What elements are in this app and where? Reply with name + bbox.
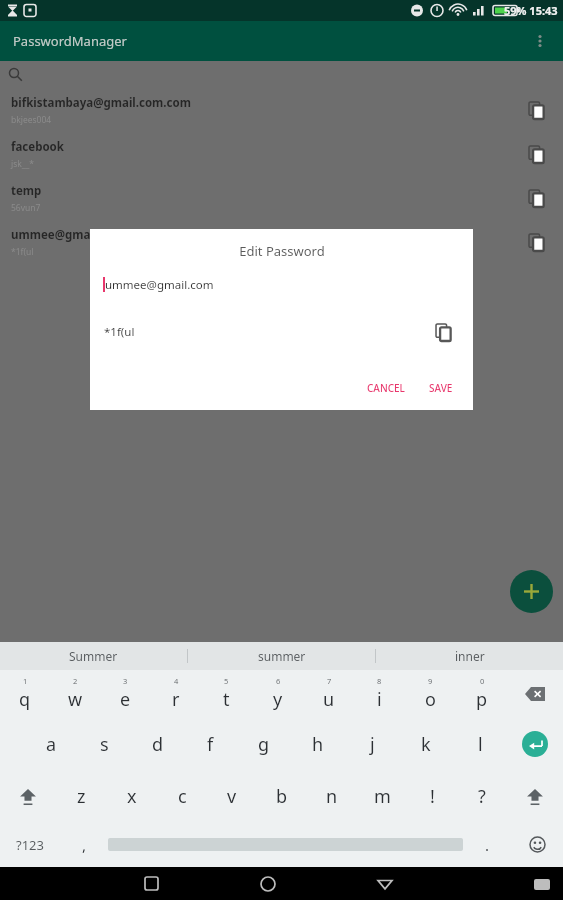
button[interactable]: Copy bbox=[431, 320, 455, 344]
button[interactable]: j bbox=[345, 718, 399, 770]
button[interactable]: SAVE bbox=[421, 376, 461, 400]
staticText: x bbox=[127, 784, 137, 809]
staticText: f bbox=[207, 732, 214, 757]
button[interactable]: 2 bbox=[50, 670, 100, 718]
staticText: w bbox=[68, 687, 83, 712]
button[interactable]: s bbox=[78, 718, 131, 770]
button[interactable]: facebook bbox=[0, 132, 563, 176]
button[interactable]: Space bbox=[108, 822, 463, 867]
staticText: 3 bbox=[123, 676, 128, 686]
staticText: p bbox=[476, 687, 488, 712]
button[interactable]: b bbox=[257, 770, 307, 822]
staticText: 4 bbox=[174, 676, 179, 686]
button[interactable]: Emoji bbox=[511, 822, 563, 867]
staticText: 5 bbox=[224, 676, 229, 686]
button[interactable]: *1f(ul bbox=[90, 319, 473, 345]
button[interactable]: temp bbox=[0, 176, 563, 220]
button[interactable]: Add password bbox=[510, 570, 553, 613]
button[interactable]: l bbox=[453, 718, 507, 770]
button[interactable]: Shift bbox=[0, 770, 56, 822]
button[interactable]: k bbox=[399, 718, 453, 770]
staticText: 56vun7 bbox=[11, 202, 41, 214]
staticText: , bbox=[82, 835, 87, 855]
staticText: a bbox=[46, 732, 57, 757]
button[interactable]: v bbox=[207, 770, 257, 822]
button[interactable]: a bbox=[25, 718, 78, 770]
button[interactable]: , bbox=[60, 822, 108, 867]
staticText: ummee@gmail.com bbox=[105, 277, 214, 293]
button[interactable]: Recent apps bbox=[134, 867, 168, 900]
staticText: ?123 bbox=[16, 836, 44, 854]
staticText: u bbox=[323, 687, 335, 712]
button[interactable]: h bbox=[291, 718, 345, 770]
button[interactable]: 9 bbox=[405, 670, 456, 718]
button[interactable]: 0 bbox=[456, 670, 507, 718]
staticText: g bbox=[258, 732, 270, 757]
button[interactable]: Copy password bbox=[523, 141, 549, 167]
button[interactable]: CANCEL bbox=[359, 376, 413, 400]
staticText: n bbox=[326, 784, 338, 809]
button[interactable]: g bbox=[237, 718, 291, 770]
staticText: *1f(ul bbox=[11, 246, 34, 258]
button[interactable]: Enter bbox=[507, 718, 563, 770]
staticText: ! bbox=[430, 784, 435, 809]
button[interactable]: 3 bbox=[100, 670, 150, 718]
staticText: temp bbox=[11, 183, 42, 199]
button[interactable]: m bbox=[357, 770, 407, 822]
button[interactable]: inner bbox=[376, 642, 563, 670]
staticText: facebook bbox=[11, 139, 64, 155]
button[interactable]: 4 bbox=[150, 670, 201, 718]
staticText: l bbox=[478, 732, 483, 757]
button[interactable]: . bbox=[463, 822, 511, 867]
button[interactable]: f bbox=[184, 718, 237, 770]
button[interactable]: Summer bbox=[0, 642, 187, 670]
staticText: z bbox=[77, 784, 86, 809]
staticText: d bbox=[152, 732, 164, 757]
button[interactable]: 8 bbox=[354, 670, 405, 718]
button[interactable]: c bbox=[157, 770, 207, 822]
button[interactable]: 7 bbox=[303, 670, 354, 718]
staticText: Summer bbox=[69, 648, 118, 664]
staticText: i bbox=[377, 687, 382, 712]
staticText: SAVE bbox=[429, 381, 453, 395]
button[interactable]: 1 bbox=[0, 670, 50, 718]
button[interactable]: x bbox=[107, 770, 157, 822]
staticText: 2 bbox=[73, 676, 78, 686]
staticText: h bbox=[312, 732, 324, 757]
staticText: ? bbox=[478, 784, 486, 809]
staticText: 1 bbox=[23, 676, 28, 686]
button[interactable]: z bbox=[56, 770, 107, 822]
staticText: bifkistambaya@gmail.com.com bbox=[11, 95, 191, 111]
staticText: CANCEL bbox=[367, 381, 405, 395]
staticText: 6 bbox=[276, 676, 281, 686]
button[interactable]: More options bbox=[525, 26, 555, 56]
button[interactable]: Home bbox=[251, 867, 285, 900]
staticText: r bbox=[172, 687, 180, 712]
staticText: y bbox=[273, 687, 283, 712]
button[interactable]: bifkistambaya@gmail.com.com bbox=[0, 88, 563, 132]
button[interactable]: Back bbox=[368, 867, 402, 900]
staticText: v bbox=[227, 784, 237, 809]
staticText: s bbox=[100, 732, 109, 757]
button[interactable]: Backspace bbox=[507, 670, 563, 718]
button[interactable]: Shift bbox=[507, 770, 563, 822]
button[interactable]: Copy password bbox=[523, 185, 549, 211]
staticText: b bbox=[276, 784, 288, 809]
button[interactable]: ? bbox=[457, 770, 507, 822]
button[interactable]: d bbox=[131, 718, 184, 770]
button[interactable]: Keyboard layout bbox=[527, 869, 557, 899]
button[interactable]: 5 bbox=[201, 670, 252, 718]
button[interactable]: ?123 bbox=[0, 822, 60, 867]
staticText: c bbox=[178, 784, 187, 809]
staticText: inner bbox=[455, 648, 485, 664]
button[interactable]: n bbox=[307, 770, 357, 822]
button[interactable]: ! bbox=[407, 770, 457, 822]
button[interactable]: Copy password bbox=[523, 229, 549, 255]
staticText: 0 bbox=[480, 676, 485, 686]
staticText: 7 bbox=[327, 676, 332, 686]
button[interactable]: 6 bbox=[252, 670, 303, 718]
button[interactable]: ummee@gmail.com bbox=[0, 220, 563, 264]
button[interactable]: summer bbox=[188, 642, 375, 670]
button[interactable]: Copy password bbox=[523, 97, 549, 123]
